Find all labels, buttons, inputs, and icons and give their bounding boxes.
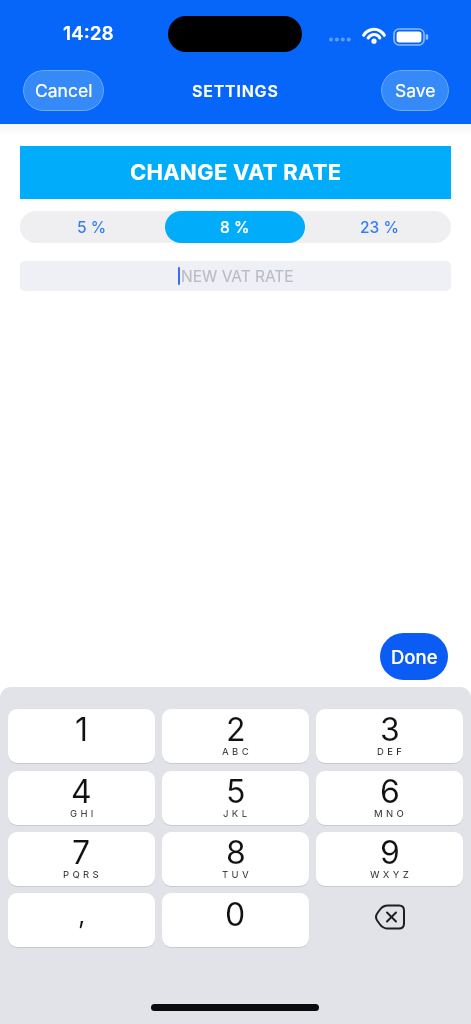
button[interactable]: Save <box>381 70 449 111</box>
button[interactable]: , <box>8 893 155 948</box>
button[interactable]: 6 <box>316 771 463 826</box>
staticText: , <box>78 899 86 930</box>
button[interactable]: 8 % <box>165 211 305 243</box>
button[interactable]: 1 <box>8 709 155 764</box>
staticText: T U V <box>222 869 250 880</box>
staticText: 8 <box>226 833 246 872</box>
button[interactable]: 23 % <box>307 211 451 243</box>
staticText: 1 <box>75 710 89 749</box>
staticText: 4 <box>71 772 92 811</box>
staticText: D E F <box>377 746 403 757</box>
staticText: G H I <box>70 808 94 819</box>
button[interactable]: 3 <box>316 709 463 764</box>
staticText: CHANGE VAT RATE <box>130 159 342 186</box>
staticText: Cancel <box>35 80 93 101</box>
staticText: 8 % <box>220 218 250 237</box>
staticText: 5 % <box>77 218 107 237</box>
button[interactable]: Cancel <box>23 70 104 111</box>
button[interactable] <box>316 890 463 944</box>
staticText: 6 <box>380 772 400 811</box>
staticText: Save <box>395 80 436 101</box>
button[interactable]: 8 <box>162 832 309 887</box>
staticText: SETTINGS <box>192 81 279 100</box>
button[interactable]: 7 <box>8 832 155 887</box>
staticText: 3 <box>380 710 400 749</box>
button[interactable]: 2 <box>162 709 309 764</box>
staticText: 23 % <box>360 218 399 237</box>
button[interactable]: 5 <box>162 771 309 826</box>
staticText: Done <box>391 646 438 668</box>
button[interactable]: NEW VAT RATE <box>20 261 451 291</box>
staticText: A B C <box>222 746 250 757</box>
button[interactable]: Done <box>380 633 448 680</box>
staticText: P Q R S <box>63 869 100 880</box>
staticText: W X Y Z <box>370 869 410 880</box>
staticText: M N O <box>374 808 405 819</box>
staticText: 9 <box>380 833 400 872</box>
button[interactable]: 5 % <box>20 211 163 243</box>
button[interactable]: 9 <box>316 832 463 887</box>
staticText: 14:28 <box>63 22 114 45</box>
button[interactable]: CHANGE VAT RATE <box>20 146 451 199</box>
staticText: 2 <box>226 710 246 749</box>
button[interactable]: 0 <box>162 893 309 948</box>
staticText: NEW VAT RATE <box>181 267 294 286</box>
staticText: 0 <box>225 895 246 934</box>
button[interactable]: 4 <box>8 771 155 826</box>
staticText: 5 <box>226 772 246 811</box>
staticText: J K L <box>223 808 248 819</box>
staticText: 7 <box>72 833 91 872</box>
